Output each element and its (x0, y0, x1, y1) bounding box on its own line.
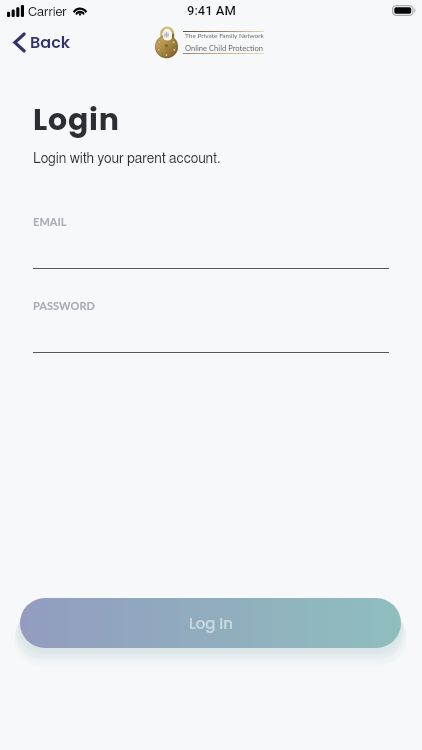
staticText: EMAIL (33, 215, 67, 228)
staticText: The Private Family Network (185, 32, 264, 40)
staticText: Online Child Protection (185, 43, 264, 52)
staticText: Back (30, 31, 71, 53)
staticText: 9:41 AM (187, 3, 236, 18)
button[interactable]: Log In (20, 598, 401, 648)
staticText: Carrier (28, 6, 67, 19)
staticText: Login with your parent account. (33, 152, 221, 166)
button[interactable]: Back (12, 29, 75, 55)
staticText: Log In (189, 613, 233, 634)
staticText: Login (33, 99, 120, 141)
staticText: PASSWORD (33, 299, 96, 312)
